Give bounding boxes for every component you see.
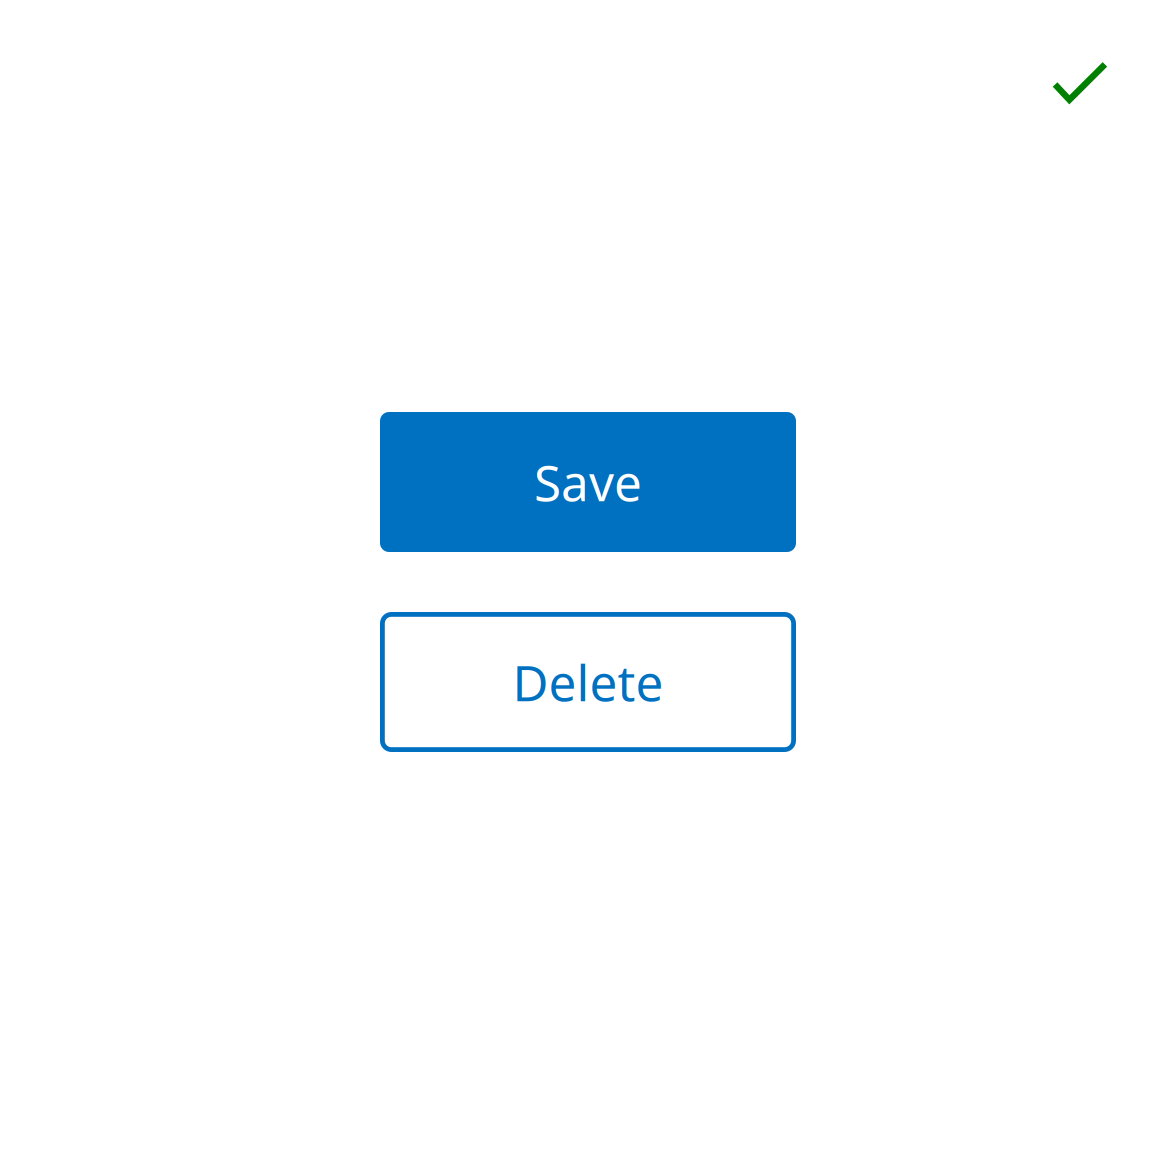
staticText: Save <box>534 449 642 515</box>
button[interactable]: Delete <box>380 612 796 752</box>
button[interactable]: Confirm <box>1037 47 1121 119</box>
button[interactable]: Save <box>380 412 796 552</box>
staticText: Delete <box>512 649 663 715</box>
